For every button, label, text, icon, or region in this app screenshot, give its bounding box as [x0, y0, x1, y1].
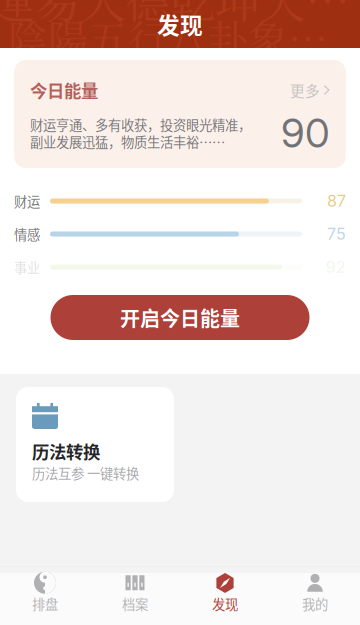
staticText: 开启今日能量 — [120, 303, 240, 332]
button[interactable]: 排盘 — [0, 567, 90, 624]
staticText: 情感 — [14, 224, 40, 244]
staticText: 75 — [327, 224, 346, 244]
staticText: 发现 — [157, 8, 203, 40]
staticText: 历法互参 一键转换 — [32, 463, 139, 483]
staticText: 事业 — [14, 257, 40, 277]
staticText: 90 — [281, 109, 330, 157]
staticText: 财运 — [14, 191, 40, 211]
staticText: 发现 — [212, 594, 238, 613]
staticText: 档案 — [122, 594, 148, 613]
button[interactable]: 历法转换 — [16, 387, 174, 502]
button[interactable]: 发现 — [180, 567, 270, 624]
button[interactable]: 档案 — [90, 567, 180, 624]
staticText: 财运亨通、多有收获，投资眼光精准， — [30, 115, 251, 134]
staticText: 92 — [326, 257, 346, 277]
button[interactable]: 开启今日能量 — [50, 295, 309, 340]
button[interactable]: 我的 — [270, 567, 360, 624]
staticText: 历法转换 — [32, 438, 100, 464]
staticText: 我的 — [302, 594, 328, 613]
staticText: 運易大德乾坤天地人和道法自然 — [0, 0, 352, 31]
staticText: 排盘 — [32, 594, 58, 613]
staticText: 今日能量 — [30, 77, 98, 103]
staticText: 陰陽五行八卦象數命理玄機 — [8, 8, 352, 66]
staticText: 87 — [327, 191, 346, 211]
staticText: 副业发展迅猛，物质生活丰裕…… — [30, 132, 225, 151]
button[interactable]: 更多 — [290, 80, 330, 100]
staticText: 更多 — [290, 79, 320, 101]
